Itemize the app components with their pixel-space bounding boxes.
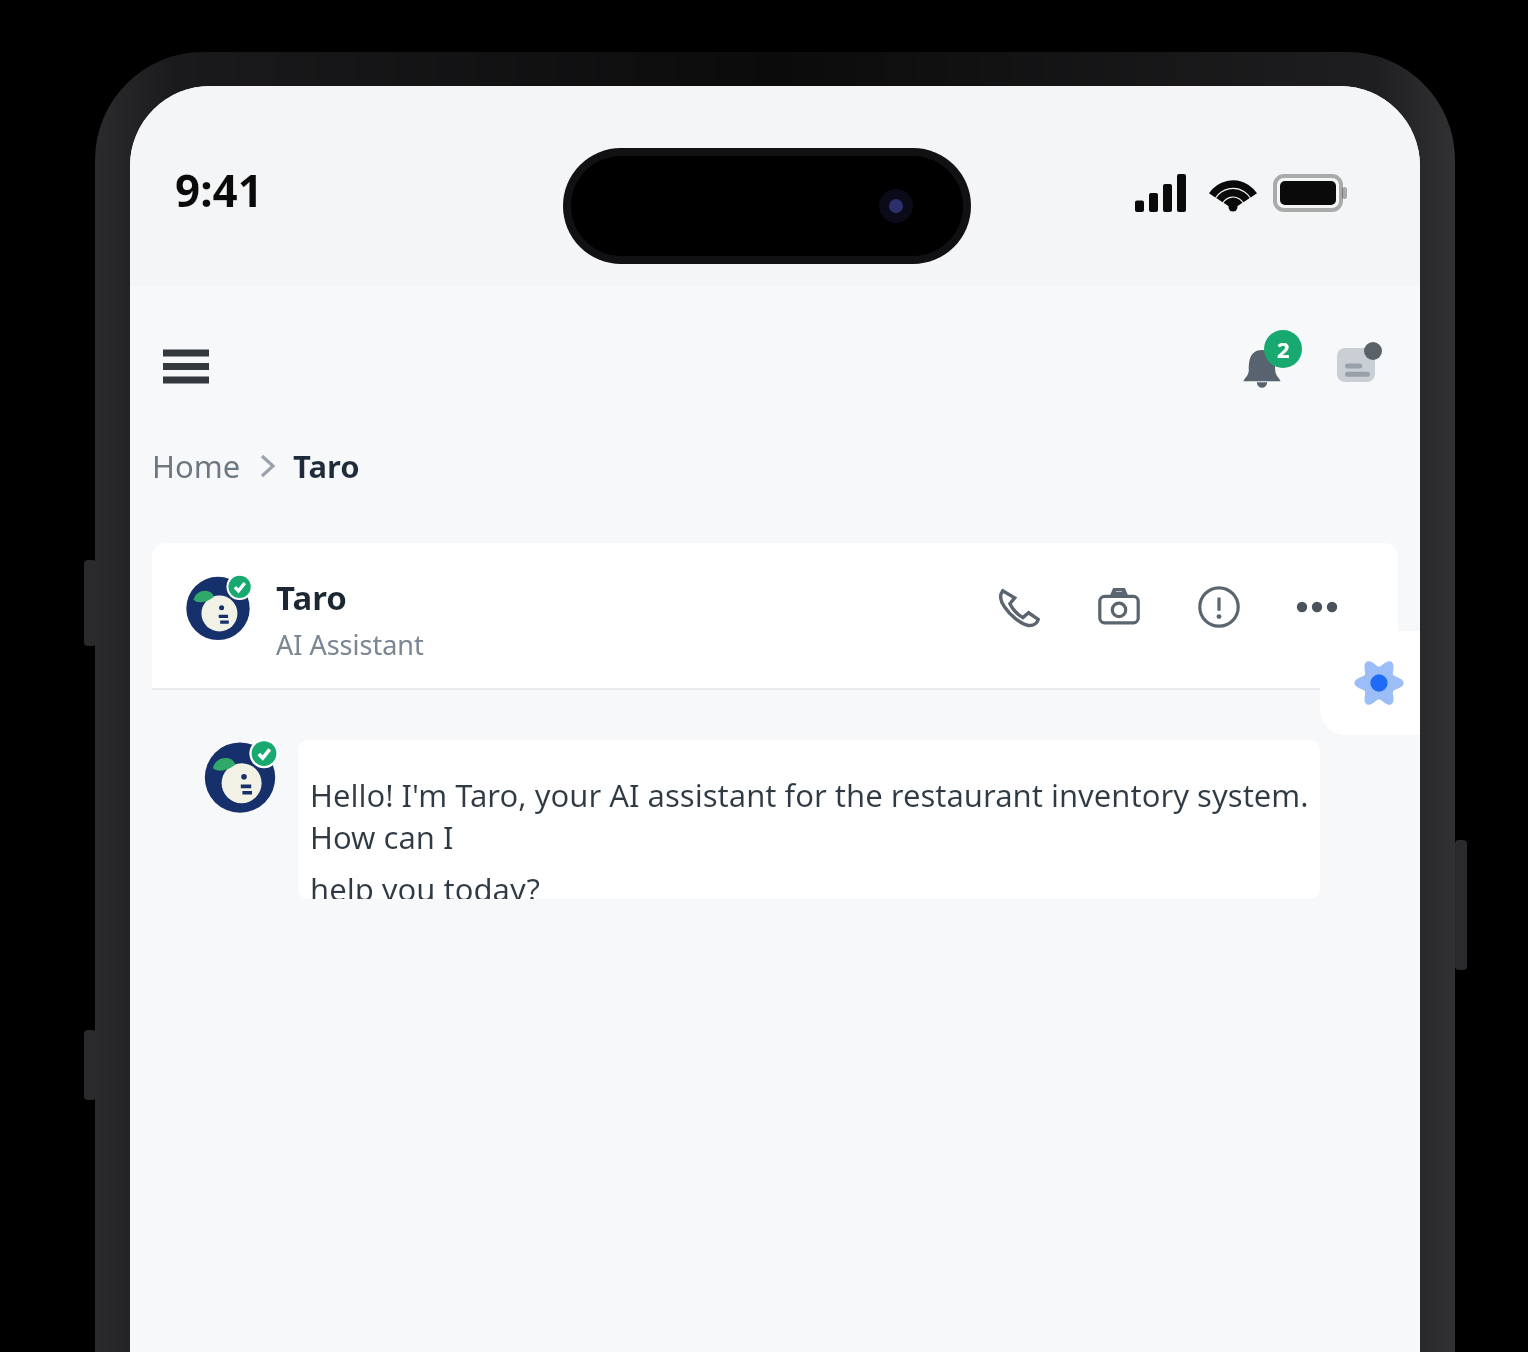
button[interactable]: Home bbox=[150, 441, 243, 491]
button[interactable]: Settings bbox=[1320, 631, 1420, 735]
button[interactable]: Call bbox=[975, 563, 1063, 651]
staticText: Taro bbox=[293, 445, 360, 487]
button[interactable]: Messages bbox=[1315, 322, 1403, 410]
button[interactable]: Menu bbox=[142, 322, 230, 410]
staticText: 9:41 bbox=[175, 160, 263, 220]
button[interactable]: Camera bbox=[1075, 563, 1163, 651]
button[interactable]: Taro bbox=[152, 543, 1398, 690]
button[interactable]: Notifications bbox=[1220, 322, 1308, 410]
button[interactable]: Hello! I'm Taro, your AI assistant for t… bbox=[298, 740, 1320, 899]
staticText: Taro bbox=[276, 575, 347, 620]
staticText: Hello! I'm Taro, your AI assistant for t… bbox=[310, 774, 1320, 858]
staticText: Home bbox=[152, 445, 241, 487]
button[interactable]: More bbox=[1275, 563, 1363, 651]
staticText: help you today? bbox=[310, 868, 540, 899]
staticText: 2 bbox=[1277, 334, 1290, 364]
button[interactable]: Info bbox=[1175, 563, 1263, 651]
staticText: AI Assistant bbox=[276, 626, 424, 663]
